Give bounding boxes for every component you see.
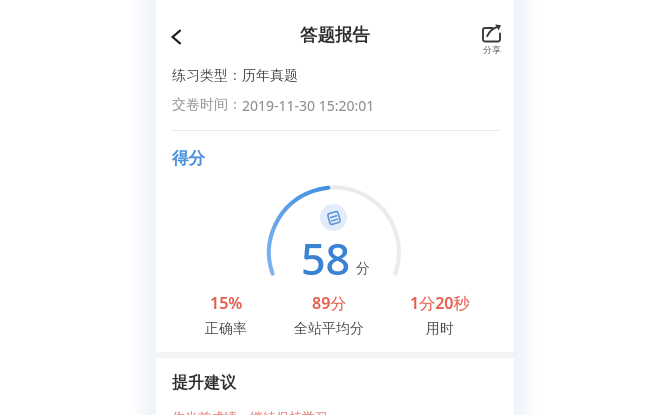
button[interactable]: 1分20秒 xyxy=(380,292,500,338)
staticText: 15% xyxy=(210,292,243,314)
staticText: 提升建议 xyxy=(172,373,236,393)
button[interactable]: Share xyxy=(473,14,517,58)
staticText: 得分 xyxy=(172,148,205,169)
staticText: 89分 xyxy=(312,292,347,314)
button[interactable]: Back xyxy=(156,15,200,59)
staticText: 你当前成绩，继续保持学习 xyxy=(172,409,328,415)
staticText: 正确率 xyxy=(205,320,247,338)
staticText: 58 xyxy=(301,229,351,288)
staticText: 交卷时间： xyxy=(172,96,242,114)
staticText: 2019-11-30 15:20:01 xyxy=(242,96,375,115)
staticText: 1分20秒 xyxy=(410,292,470,314)
staticText: 用时 xyxy=(426,320,454,338)
button[interactable]: 15% xyxy=(166,292,286,338)
staticText: 全站平均分 xyxy=(294,320,364,338)
staticText: 练习类型： xyxy=(172,67,242,85)
staticText: 历年真题 xyxy=(242,67,298,85)
staticText: 分享 xyxy=(483,44,501,55)
staticText: 分 xyxy=(356,260,370,278)
staticText: 答题报告 xyxy=(300,24,370,46)
button[interactable]: 89分 xyxy=(269,292,389,338)
